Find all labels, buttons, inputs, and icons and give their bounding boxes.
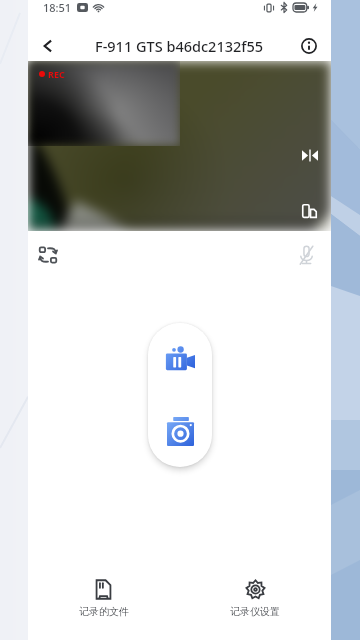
button[interactable]: Device info (297, 34, 321, 58)
button[interactable]: Take photo (148, 406, 212, 457)
button[interactable]: Microphone off (291, 240, 321, 270)
staticText: 18:51 (43, 0, 72, 15)
staticText: REC (48, 68, 65, 80)
button[interactable]: Pause recording (148, 333, 212, 384)
button[interactable]: Switch camera (33, 240, 63, 270)
button[interactable]: Change layout (297, 199, 321, 223)
button[interactable]: Fit screen (297, 142, 323, 168)
staticText: F-911 GTS b46dc2132f55 (95, 36, 264, 56)
button[interactable]: Back (36, 34, 60, 58)
button[interactable]: 记录仪设置 (179, 568, 331, 618)
button[interactable]: 记录的文件 (28, 568, 179, 618)
staticText: 记录的文件 (79, 605, 129, 618)
staticText: 记录仪设置 (230, 605, 280, 618)
